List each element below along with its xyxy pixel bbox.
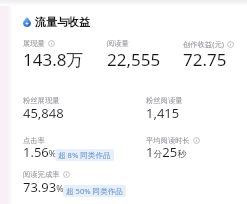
staticText: 1分25秒 <box>146 143 186 161</box>
button[interactable]: 超 8% 同类作品 <box>55 149 114 161</box>
staticText: 阅读完成率 <box>23 170 60 179</box>
staticText: 点击率 <box>23 136 45 145</box>
staticText: 143.8万 <box>23 48 84 71</box>
staticText: 粉丝展现量 <box>23 96 60 105</box>
staticText: 流量与收益 <box>35 15 90 29</box>
button[interactable]: 流量与收益 <box>23 15 90 29</box>
staticText: 平均阅读时长 <box>146 136 190 145</box>
staticText: 72.75 <box>183 48 227 71</box>
staticText: 超 8% 同类作品 <box>58 150 111 160</box>
staticText: 创作收益(元) <box>183 39 224 49</box>
staticText: 1,415 <box>146 104 180 122</box>
staticText: 展现量 <box>23 39 45 48</box>
staticText: 22,555 <box>107 48 161 71</box>
staticText: 1.56% <box>23 143 57 161</box>
staticText: 73.93% <box>23 178 64 196</box>
staticText: 阅读量 <box>107 39 129 48</box>
staticText: 粉丝阅读量 <box>146 96 183 105</box>
button[interactable]: 超 50% 同类作品 <box>63 185 126 197</box>
staticText: 超 50% 同类作品 <box>66 186 123 196</box>
staticText: 45,848 <box>23 104 64 122</box>
